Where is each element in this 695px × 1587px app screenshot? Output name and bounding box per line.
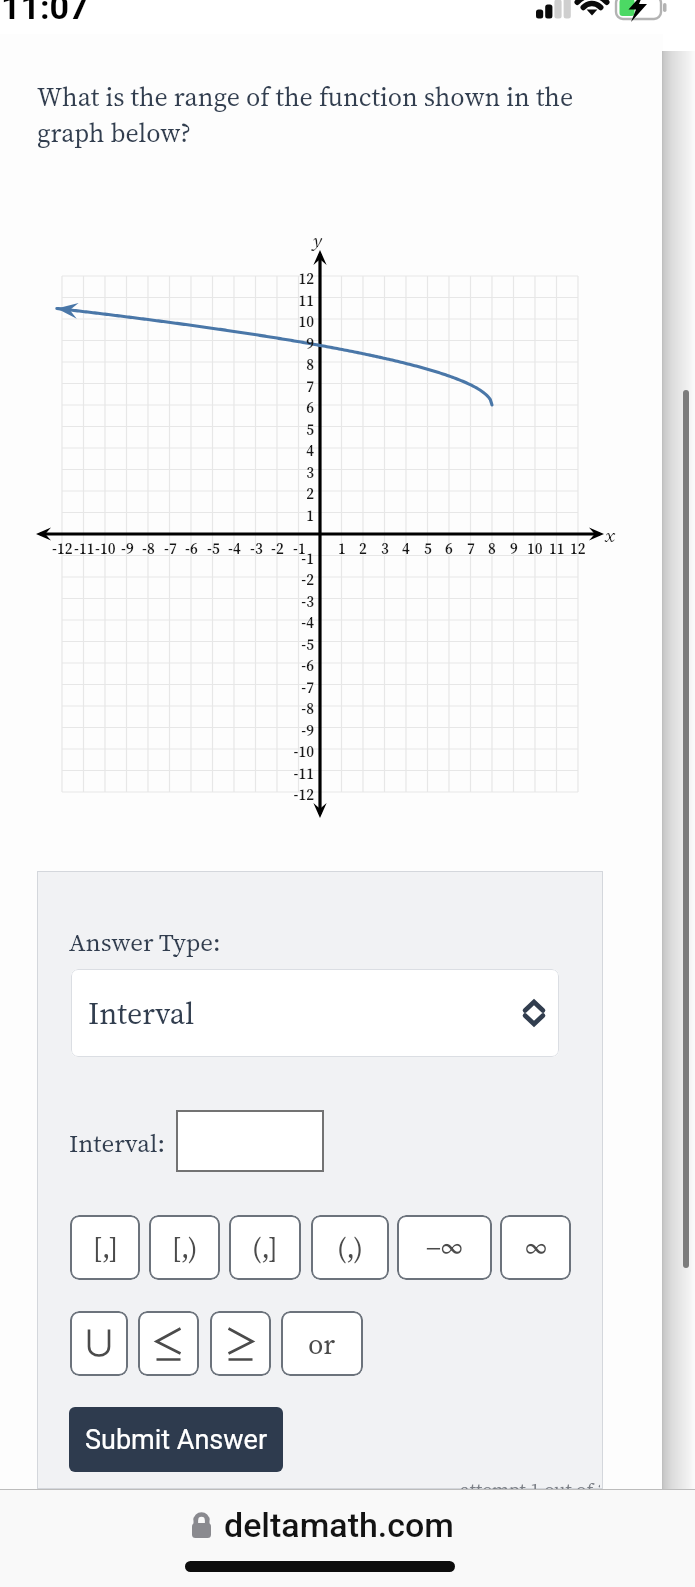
button[interactable]: −∞ <box>397 1215 492 1280</box>
staticText: (,) <box>337 1229 364 1267</box>
button[interactable]: Interval <box>71 969 559 1057</box>
staticText: Interval: <box>69 1126 165 1160</box>
button[interactable]: ∞ <box>500 1215 571 1280</box>
button[interactable]: Secure connection <box>192 1505 454 1545</box>
staticText: -5 <box>301 634 314 655</box>
staticText: 4 <box>402 538 410 559</box>
staticText: 12 <box>298 268 314 289</box>
staticText: 11:07 <box>1 0 89 21</box>
staticText: -2 <box>301 569 314 590</box>
staticText: 10 <box>527 538 543 559</box>
staticText: 2 <box>306 483 314 504</box>
button[interactable]: [,] <box>70 1215 140 1280</box>
staticText: -4 <box>301 612 314 633</box>
staticText: -6 <box>301 655 314 676</box>
staticText: 7 <box>306 376 314 397</box>
staticText: −∞ <box>426 1229 463 1267</box>
staticText: -11 <box>74 538 95 559</box>
staticText: 10 <box>298 311 314 332</box>
staticText: -1 <box>301 548 314 569</box>
staticText: 9 <box>510 538 518 559</box>
staticText: [,] <box>93 1229 118 1267</box>
staticText: What is the range of the function shown … <box>37 79 647 151</box>
staticText: or <box>308 1325 336 1363</box>
staticText: Answer Type: <box>69 925 221 959</box>
staticText: -9 <box>121 538 134 559</box>
staticText: 5 <box>306 419 314 440</box>
staticText: ∞ <box>525 1229 547 1267</box>
staticText: x <box>605 522 615 548</box>
staticText: -2 <box>271 538 284 559</box>
staticText: -3 <box>250 538 263 559</box>
staticText: 1 <box>338 538 346 559</box>
staticText: [,) <box>172 1229 198 1267</box>
staticText: -8 <box>142 538 155 559</box>
staticText: Submit Answer <box>85 1424 268 1456</box>
staticText: 6 <box>306 397 314 418</box>
staticText: 3 <box>306 462 314 483</box>
staticText: 8 <box>306 354 314 375</box>
staticText: 5 <box>424 538 432 559</box>
staticText: -8 <box>301 698 314 719</box>
button[interactable]: (,) <box>311 1215 389 1280</box>
staticText: -9 <box>301 720 314 741</box>
staticText: 4 <box>306 440 314 461</box>
button[interactable] <box>176 1110 324 1172</box>
button[interactable]: Union <box>70 1311 128 1376</box>
staticText: 6 <box>445 538 453 559</box>
button[interactable]: or <box>281 1311 363 1376</box>
staticText: -11 <box>293 763 314 784</box>
button[interactable]: Submit Answer <box>69 1407 283 1472</box>
other: Secure connection <box>192 1512 211 1538</box>
button[interactable]: (,] <box>229 1215 301 1280</box>
staticText: -10 <box>293 741 314 762</box>
staticText: -7 <box>164 538 177 559</box>
staticText: -5 <box>207 538 220 559</box>
staticText: 9 <box>306 333 314 354</box>
staticText: Interval <box>88 993 195 1034</box>
staticText: -6 <box>185 538 198 559</box>
staticText: 7 <box>467 538 475 559</box>
staticText: -3 <box>301 591 314 612</box>
staticText: -4 <box>228 538 241 559</box>
staticText: -12 <box>293 784 314 805</box>
button[interactable]: [,) <box>149 1215 220 1280</box>
staticText: 12 <box>570 538 586 559</box>
staticText: -10 <box>95 538 116 559</box>
staticText: attempt 1 out of 2 <box>460 1476 600 1489</box>
staticText: 2 <box>359 538 367 559</box>
staticText: (,] <box>252 1229 278 1267</box>
staticText: 1 <box>306 505 314 526</box>
button[interactable]: Less than or equal <box>138 1311 199 1376</box>
staticText: 8 <box>488 538 496 559</box>
staticText: 11 <box>298 290 314 311</box>
staticText: 11 <box>549 538 565 559</box>
staticText: y <box>313 227 323 253</box>
staticText: deltamath.com <box>224 1505 454 1545</box>
staticText: -7 <box>301 677 314 698</box>
staticText: -12 <box>52 538 73 559</box>
button[interactable]: Greater than or equal <box>210 1311 271 1376</box>
staticText: -1 <box>293 538 306 559</box>
staticText: 3 <box>381 538 389 559</box>
